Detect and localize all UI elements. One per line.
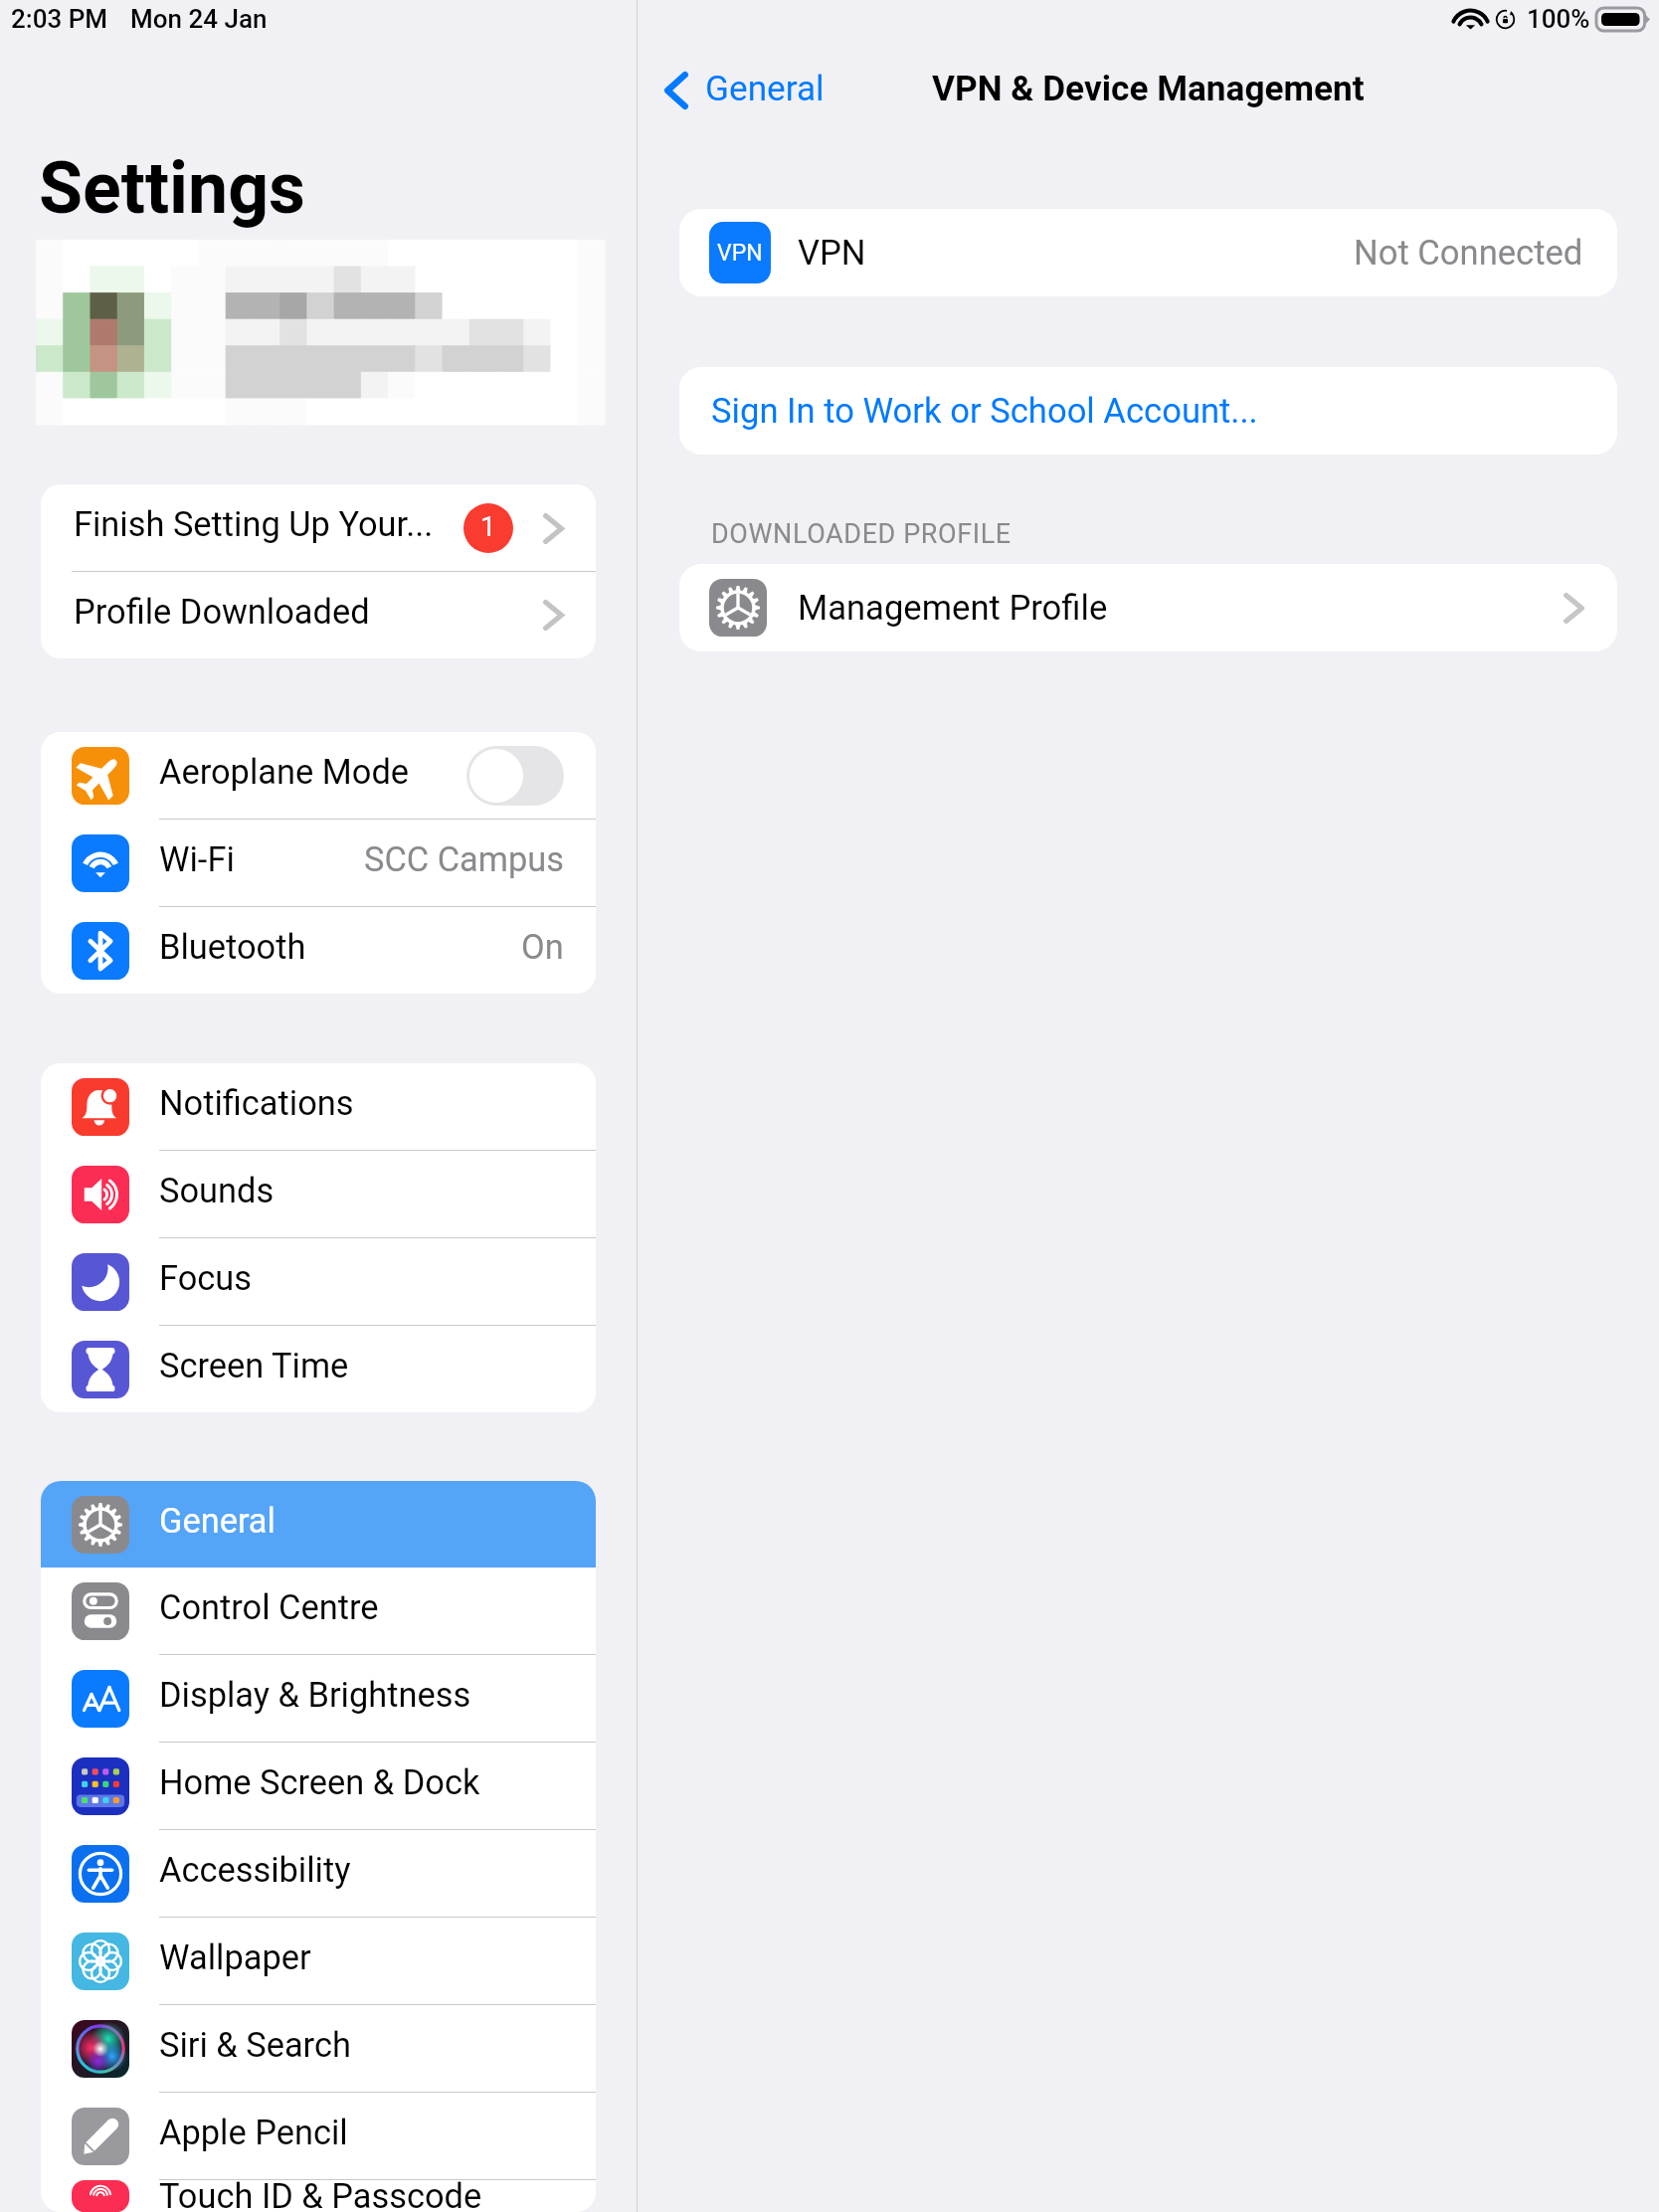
button[interactable]: Profile Downloaded — [41, 572, 596, 658]
staticText: Not Connected — [1354, 233, 1583, 274]
button[interactable]: Finish Setting Up Your... — [41, 484, 596, 571]
staticText: VPN — [717, 240, 763, 267]
staticText: Sounds — [159, 1171, 275, 1210]
staticText: Wi-Fi — [159, 839, 235, 879]
staticText: Aeroplane Mode — [159, 752, 410, 792]
button[interactable]: Wallpaper — [41, 1918, 596, 2004]
button[interactable]: Display & Brightness — [41, 1655, 596, 1742]
button[interactable]: Sounds — [41, 1151, 596, 1237]
button[interactable]: Aeroplane Mode toggle — [466, 746, 564, 806]
staticText: Management Profile — [798, 588, 1108, 629]
staticText: Sign In to Work or School Account... — [711, 391, 1258, 432]
button[interactable]: Notifications — [41, 1063, 596, 1150]
button[interactable]: Aeroplane Mode — [41, 732, 596, 819]
staticText: 100% — [1527, 4, 1590, 34]
staticText: Apple Pencil — [159, 2113, 348, 2152]
staticText: Screen Time — [159, 1346, 349, 1385]
button[interactable]: Apple Pencil — [41, 2093, 596, 2179]
button[interactable]: Focus — [41, 1238, 596, 1325]
staticText: Settings — [39, 147, 305, 231]
staticText: Focus — [159, 1258, 252, 1298]
staticText: Touch ID & Passcode — [159, 2176, 482, 2208]
button[interactable]: Siri & Search — [41, 2005, 596, 2092]
staticText: VPN & Device Management — [932, 68, 1365, 108]
staticText: Accessibility — [159, 1850, 351, 1890]
staticText: Display & Brightness — [159, 1675, 471, 1715]
staticText: General — [705, 68, 825, 108]
button[interactable]: Bluetooth — [41, 907, 596, 994]
staticText: Finish Setting Up Your... — [74, 504, 434, 544]
button[interactable]: Management Profile — [679, 564, 1617, 651]
staticText: VPN — [798, 233, 866, 274]
button[interactable]: Control Centre — [41, 1567, 596, 1654]
button[interactable]: Accessibility — [41, 1830, 596, 1917]
staticText: 1 — [480, 510, 496, 543]
button[interactable]: Screen Time — [41, 1326, 596, 1412]
staticText: Bluetooth — [159, 927, 306, 967]
button[interactable]: General — [41, 1481, 596, 1567]
button[interactable]: Sign In to Work or School Account... — [679, 367, 1617, 455]
staticText: Wallpaper — [159, 1937, 311, 1977]
button[interactable]: VPN — [679, 209, 1617, 296]
staticText: On — [521, 927, 564, 967]
staticText: Profile Downloaded — [74, 592, 370, 632]
button[interactable]: Wi-Fi — [41, 820, 596, 906]
staticText: Siri & Search — [159, 2025, 351, 2065]
staticText: 2:03 PM — [11, 4, 108, 34]
button[interactable]: General — [638, 70, 844, 110]
button[interactable]: Touch ID & Passcode — [41, 2180, 596, 2212]
staticText: SCC Campus — [364, 839, 564, 879]
staticText: General — [159, 1501, 276, 1541]
staticText: Control Centre — [159, 1587, 379, 1627]
staticText: Mon 24 Jan — [130, 4, 268, 34]
button[interactable]: Home Screen & Dock — [41, 1743, 596, 1829]
staticText: DOWNLOADED PROFILE — [711, 518, 1012, 550]
staticText: Home Screen & Dock — [159, 1762, 480, 1802]
staticText: Notifications — [159, 1083, 354, 1123]
